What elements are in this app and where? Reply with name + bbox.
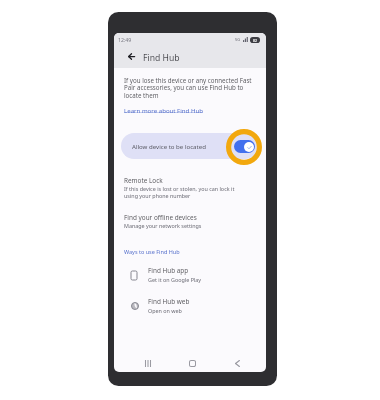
button[interactable]: Learn more about Find Hub <box>124 106 203 114</box>
staticText: Find Hub <box>143 52 180 64</box>
staticText: If this device is lost or stolen, you ca… <box>124 185 244 200</box>
button[interactable]: Remote Lock <box>124 176 244 200</box>
button[interactable]: Recent apps <box>138 353 158 372</box>
button[interactable]: Ways to use Find Hub <box>124 248 180 255</box>
button[interactable]: Back <box>123 48 139 64</box>
button[interactable]: Back <box>227 353 247 372</box>
staticText: Remote Lock <box>124 176 163 185</box>
button[interactable]: Find your offline devices <box>124 213 244 229</box>
staticText: 82 <box>253 38 257 43</box>
staticText: 5G <box>235 37 241 42</box>
staticText: Manage your network settings <box>124 222 202 229</box>
staticText: Allow device to be located <box>132 142 206 150</box>
button[interactable]: Find Hub app <box>114 264 266 286</box>
staticText: Learn more about Find Hub <box>124 106 203 114</box>
staticText: Find your offline devices <box>124 213 197 222</box>
staticText: Find Hub web <box>148 297 190 306</box>
staticText: If you lose this device or any connected… <box>124 76 254 100</box>
staticText: Open on web <box>148 307 182 314</box>
button[interactable]: Find Hub web <box>114 295 266 317</box>
button[interactable]: Home <box>182 353 202 372</box>
staticText: Find Hub app <box>148 266 189 275</box>
button[interactable]: Allow device to be located <box>121 133 258 159</box>
staticText: Get it on Google Play <box>148 276 202 283</box>
staticText: 12:49 <box>118 36 132 43</box>
staticText: Ways to use Find Hub <box>124 248 180 255</box>
